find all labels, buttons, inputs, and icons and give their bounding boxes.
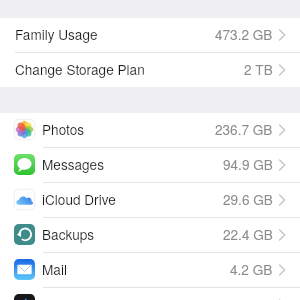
button[interactable]: Voice Memos — [0, 288, 300, 300]
staticText: 94.9 GB — [223, 154, 273, 173]
staticText: 2 TB — [244, 59, 273, 78]
staticText: Messages — [42, 154, 104, 173]
button[interactable]: Photos — [0, 113, 300, 148]
staticText: 236.7 GB — [215, 119, 273, 138]
button[interactable]: Backups — [0, 218, 300, 253]
staticText: Backups — [42, 224, 95, 243]
button[interactable]: Messages — [0, 148, 300, 183]
staticText: 29.6 GB — [223, 189, 273, 208]
button[interactable]: Change Storage Plan — [0, 53, 300, 87]
staticText: Family Usage — [15, 24, 98, 43]
staticText: 4.2 GB — [230, 259, 273, 278]
staticText: 22.4 GB — [223, 224, 273, 243]
staticText: Mail — [42, 259, 67, 278]
button[interactable]: Family Usage — [0, 18, 300, 53]
staticText: Photos — [42, 119, 85, 138]
staticText: iCloud Drive — [42, 189, 116, 208]
button[interactable]: Mail — [0, 253, 300, 288]
staticText: Change Storage Plan — [15, 59, 145, 78]
staticText: 473.2 GB — [215, 24, 273, 43]
button[interactable]: iCloud Drive — [0, 183, 300, 218]
